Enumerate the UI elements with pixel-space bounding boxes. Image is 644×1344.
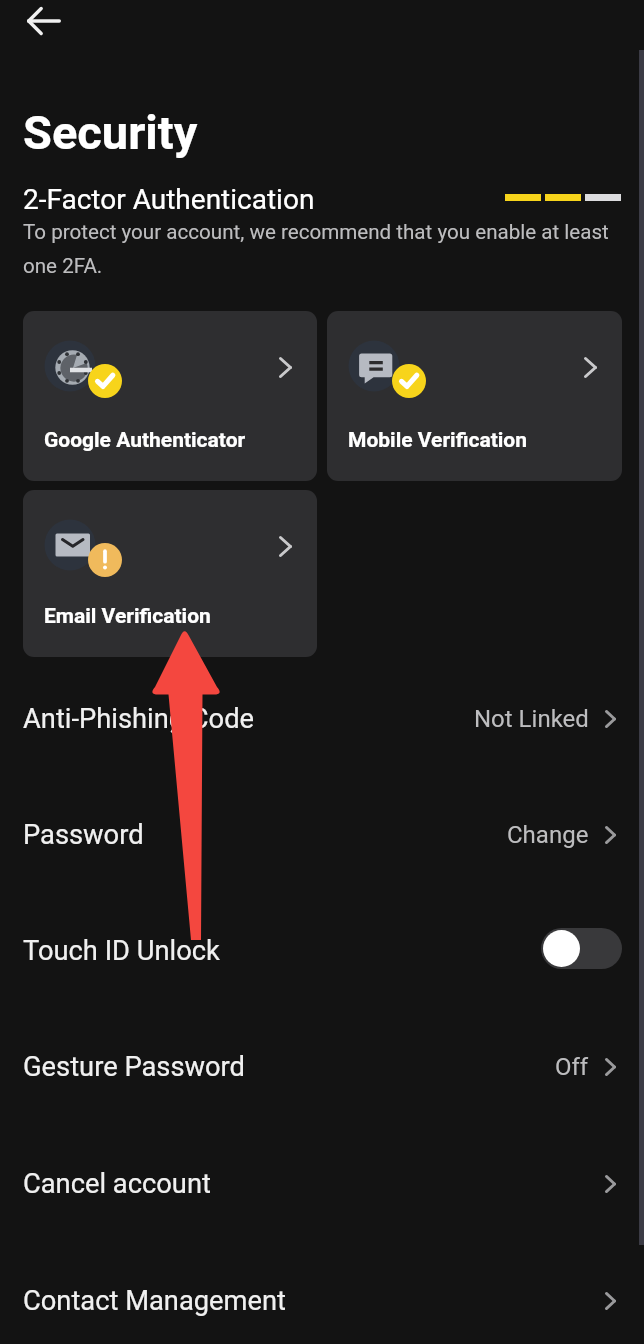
button[interactable]: Touch ID Unlock [0,893,644,1009]
staticText: Password [23,819,144,851]
staticText: Gesture Password [23,1051,245,1083]
staticText: Anti-Phishing Code [23,703,255,735]
button[interactable]: Cancel account [0,1126,644,1242]
staticText: Cancel account [23,1168,211,1200]
button[interactable]: Google Authenticator [23,311,317,481]
staticText: Mobile Verification [348,428,527,453]
staticText: Touch ID Unlock [23,935,220,967]
button[interactable]: Password [0,777,644,893]
button[interactable]: Email Verification [23,490,317,657]
button[interactable]: Gesture Password [0,1009,644,1125]
staticText: Security [23,105,198,160]
staticText: Contact Management [23,1285,286,1317]
staticText: To protect your account, we recommend th… [23,220,623,278]
staticText: Change [507,821,589,849]
staticText: Not Linked [474,705,589,733]
button[interactable]: Mobile Verification [327,311,622,481]
staticText: Email Verification [44,604,211,629]
button[interactable]: Contact Management [0,1243,644,1344]
button[interactable]: Anti-Phishing Code [0,661,644,777]
staticText: Off [555,1053,589,1081]
staticText: 2-Factor Authentication [23,183,315,216]
staticText: Google Authenticator [44,428,246,453]
button[interactable]: Back [11,0,77,43]
button[interactable]: Touch ID Unlock toggle [541,928,622,969]
